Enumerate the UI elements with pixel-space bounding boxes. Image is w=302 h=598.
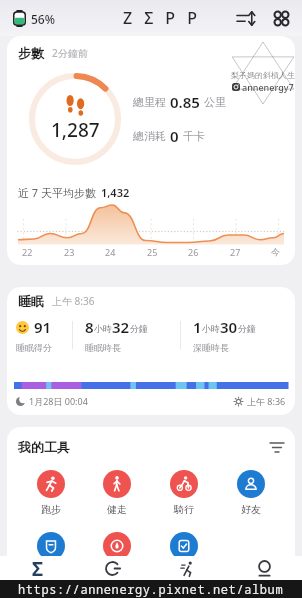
staticText: 32 [112, 317, 130, 337]
staticText: 小時 [94, 323, 112, 334]
staticText: 1月28日 00:04 [29, 395, 88, 407]
button[interactable] [150, 556, 226, 580]
staticText: 1 [193, 317, 202, 337]
staticText: 分鐘 [238, 323, 256, 334]
staticText: 8 [85, 317, 94, 337]
staticText: 26 [188, 246, 199, 258]
button[interactable] [75, 556, 150, 580]
staticText: https://annenergy.pixnet.net/album [18, 581, 284, 597]
staticText: 56% [31, 11, 55, 27]
button[interactable]: 跑步 [18, 470, 84, 516]
staticText: 23 [64, 246, 75, 258]
staticText: 上午 8:36 [52, 294, 95, 308]
staticText: 深睡時長 [193, 342, 229, 353]
button[interactable] [274, 11, 289, 26]
staticText: 小時 [202, 323, 220, 334]
button[interactable] [237, 11, 255, 26]
staticText: 24 [105, 246, 116, 258]
staticText: 睡眠時長 [85, 342, 121, 353]
staticText: 30 [220, 317, 238, 337]
button[interactable] [150, 532, 217, 560]
staticText: 今 [271, 246, 280, 257]
staticText: 千卡 [183, 129, 205, 143]
staticText: 好友 [241, 503, 261, 516]
staticText: 健走 [107, 503, 127, 516]
staticText: annenergy7 [242, 81, 294, 93]
staticText: 睡眠 [18, 293, 44, 309]
button[interactable] [84, 532, 150, 560]
staticText: 91 [34, 317, 52, 337]
button[interactable]: 睡眠 [7, 287, 295, 415]
button[interactable]: Σ [0, 556, 75, 580]
staticText: 總消耗 [133, 129, 166, 143]
button[interactable] [226, 556, 302, 580]
staticText: Σ [32, 556, 44, 580]
staticText: 公里 [204, 95, 226, 109]
staticText: 騎行 [174, 503, 194, 516]
staticText: 25 [147, 246, 158, 258]
staticText: 27 [230, 246, 241, 258]
staticText: 0 [170, 126, 179, 146]
staticText: 1,287 [51, 117, 100, 143]
staticText: 睡眠得分 [16, 342, 52, 353]
button[interactable] [18, 532, 84, 560]
staticText: 我的工具 [18, 439, 70, 455]
button[interactable]: 56% [13, 10, 55, 27]
staticText: 上午 8:36 [247, 395, 286, 407]
staticText: 跑步 [41, 503, 61, 516]
staticText: 22 [22, 246, 33, 258]
staticText: 分鐘 [130, 323, 148, 334]
staticText: 梨子媽的斜槓人生 [231, 70, 295, 80]
button[interactable]: 騎行 [150, 470, 217, 516]
button[interactable]: 好友 [217, 470, 284, 516]
staticText: 1,432 [101, 185, 130, 200]
button[interactable]: 步數 [7, 36, 295, 265]
staticText: 總里程 [133, 95, 166, 109]
staticText: 近 7 天平均步數 [18, 185, 97, 200]
button[interactable] [270, 442, 284, 453]
staticText: ΖΣΡΡ [123, 7, 209, 29]
staticText: 0.85 [170, 92, 200, 112]
button[interactable]: 健走 [84, 470, 150, 516]
staticText: 步數 [18, 45, 44, 61]
staticText: 2分鐘前 [52, 46, 88, 60]
